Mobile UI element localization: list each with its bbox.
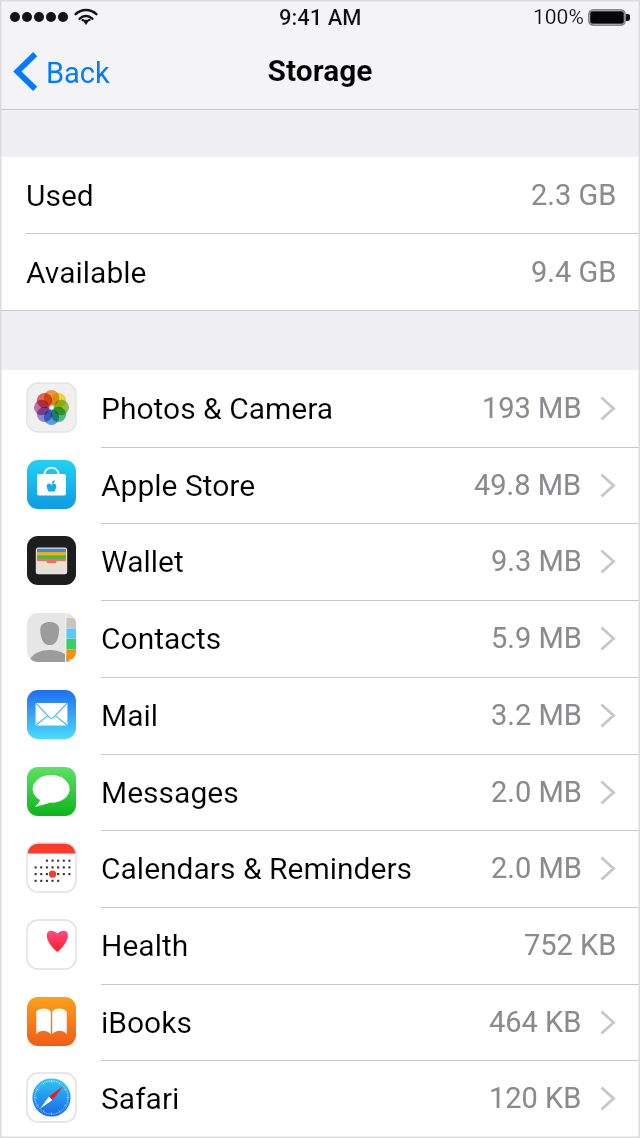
staticText: Safari — [101, 1081, 180, 1116]
staticText: 5.9 MB — [491, 621, 582, 655]
staticText: Used — [26, 178, 94, 213]
staticText: 100% — [533, 5, 584, 30]
staticText: 9.4 GB — [531, 255, 617, 289]
staticText: Photos & Camera — [101, 391, 334, 426]
staticText: Contacts — [101, 621, 222, 656]
button[interactable]: Calendars & Reminders — [0, 830, 640, 906]
staticText: 9:41 AM — [279, 5, 362, 31]
staticText: Storage — [0, 53, 640, 88]
button[interactable]: iBooks — [0, 984, 640, 1060]
staticText: Health — [101, 928, 189, 963]
staticText: 2.0 MB — [491, 851, 582, 885]
staticText: Mail — [101, 698, 159, 733]
staticText: 49.8 MB — [474, 468, 582, 502]
staticText: 2.0 MB — [491, 775, 582, 809]
staticText: 464 KB — [489, 1005, 582, 1039]
button[interactable]: Back — [0, 40, 124, 102]
button[interactable]: Wallet — [0, 523, 640, 599]
staticText: 2.3 GB — [531, 178, 617, 212]
staticText: 752 KB — [524, 928, 617, 962]
staticText: Back — [46, 56, 110, 90]
staticText: 3.2 MB — [491, 698, 582, 732]
staticText: 193 MB — [482, 391, 582, 425]
staticText: iBooks — [101, 1005, 192, 1040]
staticText: Calendars & Reminders — [101, 851, 413, 886]
button[interactable]: Available — [0, 234, 640, 310]
staticText: 120 KB — [489, 1081, 582, 1115]
staticText: Wallet — [101, 544, 184, 579]
button[interactable]: Safari — [0, 1060, 640, 1136]
staticText: Available — [26, 255, 147, 290]
staticText: Apple Store — [101, 468, 256, 503]
button[interactable]: Apple Store — [0, 447, 640, 523]
button[interactable]: Used — [0, 157, 640, 233]
button[interactable]: Contacts — [0, 600, 640, 676]
button[interactable]: Photos & Camera — [0, 370, 640, 446]
button[interactable]: Messages — [0, 754, 640, 830]
staticText: 9.3 MB — [491, 544, 582, 578]
button[interactable]: Health — [0, 907, 640, 983]
staticText: Messages — [101, 775, 239, 810]
button[interactable]: Mail — [0, 677, 640, 753]
